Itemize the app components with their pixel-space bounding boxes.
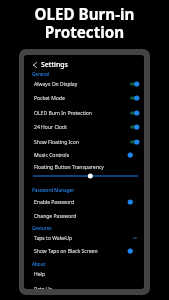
staticText: OLED Burn-in Protection <box>0 4 169 42</box>
button[interactable]: Transparency slider <box>24 171 144 181</box>
button[interactable]: Help <box>24 267 144 281</box>
button[interactable]: Show Taps on Black Screen <box>24 244 144 258</box>
button[interactable]: OLED Burn In Protection <box>24 106 144 120</box>
staticText: 24 Hour Clock <box>34 124 128 131</box>
staticText: Pocket Mode <box>34 95 128 102</box>
button[interactable]: Back <box>28 58 41 71</box>
button[interactable]: Rate Us <box>24 282 144 289</box>
staticText: OLED Burn In Protection <box>34 110 128 117</box>
staticText: Music Controls <box>34 152 128 159</box>
button[interactable]: Floating Button Transparency <box>24 160 144 174</box>
button[interactable]: 24 Hour Clock <box>24 120 144 134</box>
staticText: Taps to WakeUp <box>34 235 128 242</box>
button[interactable]: Show Floating Icon <box>24 135 144 149</box>
button[interactable]: Always On Display <box>24 77 144 91</box>
staticText: Rate Us <box>34 286 144 289</box>
staticText: Help <box>34 271 144 278</box>
staticText: Gestures <box>32 225 52 231</box>
staticText: Enable Password <box>34 199 128 206</box>
staticText: Floating Button Transparency <box>34 164 144 171</box>
button[interactable]: Change Password <box>24 209 144 223</box>
staticText: Show Taps on Black Screen <box>34 248 128 255</box>
staticText: Change Password <box>34 213 144 220</box>
staticText: Always On Display <box>34 81 128 88</box>
button[interactable]: Enable Password <box>24 195 144 209</box>
staticText: Password Manager <box>32 187 75 193</box>
staticText: Show Floating Icon <box>34 139 128 146</box>
staticText: General <box>32 71 50 77</box>
button[interactable]: Music Controls <box>24 148 144 162</box>
staticText: Settings <box>41 60 68 69</box>
button[interactable]: Pocket Mode <box>24 91 144 105</box>
staticText: About <box>32 261 46 267</box>
button[interactable]: Taps to WakeUp <box>24 231 144 245</box>
